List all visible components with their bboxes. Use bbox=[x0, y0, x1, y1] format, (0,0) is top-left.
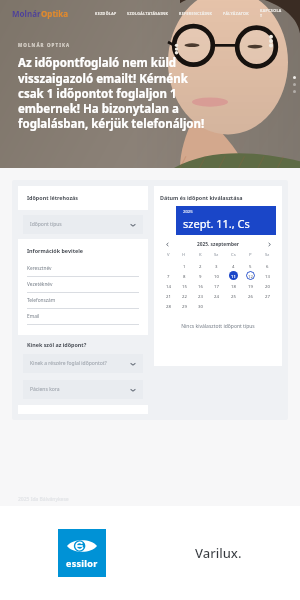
staticText: PÁLYÁZATOK bbox=[223, 11, 250, 16]
staticText: Dátum és időpont kiválasztása bbox=[160, 194, 243, 201]
button[interactable]: 1 bbox=[180, 261, 189, 270]
staticText: Az időpontfoglaló nem küld visszaigazoló… bbox=[18, 55, 208, 131]
button[interactable]: 4 bbox=[229, 261, 238, 270]
button[interactable]: REFERENCIÁINK bbox=[174, 5, 218, 22]
staticText: 8 bbox=[183, 273, 186, 279]
staticText: H bbox=[182, 252, 186, 258]
button[interactable]: 3 bbox=[212, 261, 221, 270]
button[interactable]: 30 bbox=[196, 301, 205, 310]
staticText: 30 bbox=[198, 303, 203, 309]
button[interactable]: 10 bbox=[212, 271, 221, 280]
staticText: 29 bbox=[182, 303, 187, 309]
button[interactable]: 5 bbox=[246, 261, 255, 270]
button[interactable]: 18 bbox=[229, 281, 238, 290]
button[interactable]: 2 bbox=[196, 261, 205, 270]
staticText: szept. 11., Cs bbox=[183, 216, 250, 231]
button[interactable]: 28 bbox=[164, 301, 173, 310]
staticText: 23 bbox=[198, 293, 203, 299]
button[interactable]: Varilux. bbox=[195, 544, 282, 562]
button[interactable]: Slide 1 bbox=[293, 76, 296, 79]
button[interactable]: 25 bbox=[229, 291, 238, 300]
button[interactable]: Keresztnév bbox=[27, 261, 139, 277]
button[interactable]: KEZDŐLAP bbox=[90, 5, 122, 22]
staticText: MOLNÁR OPTIKA bbox=[18, 42, 71, 48]
staticText: 3 bbox=[215, 263, 218, 269]
staticText: Email bbox=[27, 313, 40, 320]
staticText: Páciens kora bbox=[30, 386, 130, 393]
button[interactable]: Páciens kora bbox=[23, 380, 143, 399]
button[interactable]: 22 bbox=[180, 291, 189, 300]
button[interactable]: 14 bbox=[164, 281, 173, 290]
staticText: 17 bbox=[214, 283, 219, 289]
button[interactable]: Previous month bbox=[162, 239, 172, 249]
button[interactable]: Vezetéknév bbox=[27, 277, 139, 293]
button[interactable]: 20 bbox=[263, 281, 272, 290]
staticText: Vezetéknév bbox=[27, 281, 53, 288]
staticText: Cs bbox=[231, 252, 236, 258]
button[interactable]: Kinek a részére foglal időpontot? bbox=[23, 354, 143, 373]
staticText: Sz bbox=[265, 252, 270, 258]
staticText: 24 bbox=[214, 293, 219, 299]
button[interactable]: Next month bbox=[264, 239, 274, 249]
staticText: 10 bbox=[214, 273, 219, 279]
button[interactable]: 19 bbox=[246, 281, 255, 290]
button[interactable]: Telefonszám bbox=[27, 293, 139, 309]
staticText: SZOLGÁLTATÁSAINK bbox=[127, 11, 169, 16]
button[interactable]: 27 bbox=[263, 291, 272, 300]
button[interactable]: 9 bbox=[196, 271, 205, 280]
button[interactable]: 6 bbox=[263, 261, 272, 270]
staticText: KEZDŐLAP bbox=[95, 11, 117, 16]
button[interactable]: 23 bbox=[196, 291, 205, 300]
staticText: Nincs kiválasztott időpont típus bbox=[160, 323, 276, 330]
staticText: 21 bbox=[166, 293, 171, 299]
staticText: 14 bbox=[166, 283, 171, 289]
button[interactable]: 13 bbox=[263, 271, 272, 280]
staticText: 5 bbox=[249, 263, 252, 269]
staticText: Sz bbox=[214, 252, 219, 258]
button[interactable]: Email bbox=[27, 309, 139, 325]
staticText: 6 bbox=[266, 263, 269, 269]
staticText: 20 bbox=[265, 283, 270, 289]
staticText: P bbox=[249, 252, 252, 258]
staticText: 2025. szeptember bbox=[172, 241, 264, 248]
button[interactable]: Slide 3 bbox=[293, 90, 296, 93]
staticText: Kinek szól az időpont? bbox=[27, 341, 87, 348]
button[interactable]: 15 bbox=[180, 281, 189, 290]
staticText: 15 bbox=[182, 283, 187, 289]
staticText: 19 bbox=[248, 283, 253, 289]
staticText: 28 bbox=[166, 303, 171, 309]
button[interactable]: 26 bbox=[246, 291, 255, 300]
button[interactable]: SZOLGÁLTATÁSAINK bbox=[122, 5, 174, 22]
button[interactable]: KAPCSOLAT bbox=[255, 2, 288, 24]
staticText: 4 bbox=[232, 263, 235, 269]
staticText: 26 bbox=[248, 293, 253, 299]
staticText: Időpont létrehozás bbox=[27, 194, 78, 201]
staticText: 12 bbox=[248, 273, 253, 279]
staticText: 2 bbox=[199, 263, 202, 269]
staticText: V bbox=[167, 252, 170, 258]
button[interactable]: 8 bbox=[180, 271, 189, 280]
staticText: 2025 bbox=[183, 209, 193, 215]
button[interactable]: 24 bbox=[212, 291, 221, 300]
button[interactable]: 12 bbox=[246, 271, 255, 280]
button[interactable]: 16 bbox=[196, 281, 205, 290]
button[interactable]: 2025 bbox=[176, 206, 276, 235]
button[interactable]: Időpont típus bbox=[23, 215, 143, 234]
button[interactable]: Essilor bbox=[58, 529, 106, 577]
button[interactable]: 11 bbox=[229, 271, 238, 280]
staticText: 18 bbox=[231, 283, 236, 289]
staticText: 16 bbox=[198, 283, 203, 289]
button[interactable]: Slide 2 bbox=[293, 83, 296, 86]
staticText: Kinek a részére foglal időpontot? bbox=[30, 360, 130, 367]
staticText: Molnár bbox=[12, 8, 41, 19]
button[interactable]: 29 bbox=[180, 301, 189, 310]
staticText: 1 bbox=[183, 263, 186, 269]
button[interactable]: 21 bbox=[164, 291, 173, 300]
staticText: 27 bbox=[265, 293, 270, 299]
staticText: 9 bbox=[199, 273, 202, 279]
button[interactable]: 7 bbox=[164, 271, 173, 280]
button[interactable]: Molnár Optika home bbox=[12, 8, 68, 19]
staticText: 22 bbox=[182, 293, 187, 299]
button[interactable]: PÁLYÁZATOK bbox=[218, 5, 255, 22]
button[interactable]: 17 bbox=[212, 281, 221, 290]
